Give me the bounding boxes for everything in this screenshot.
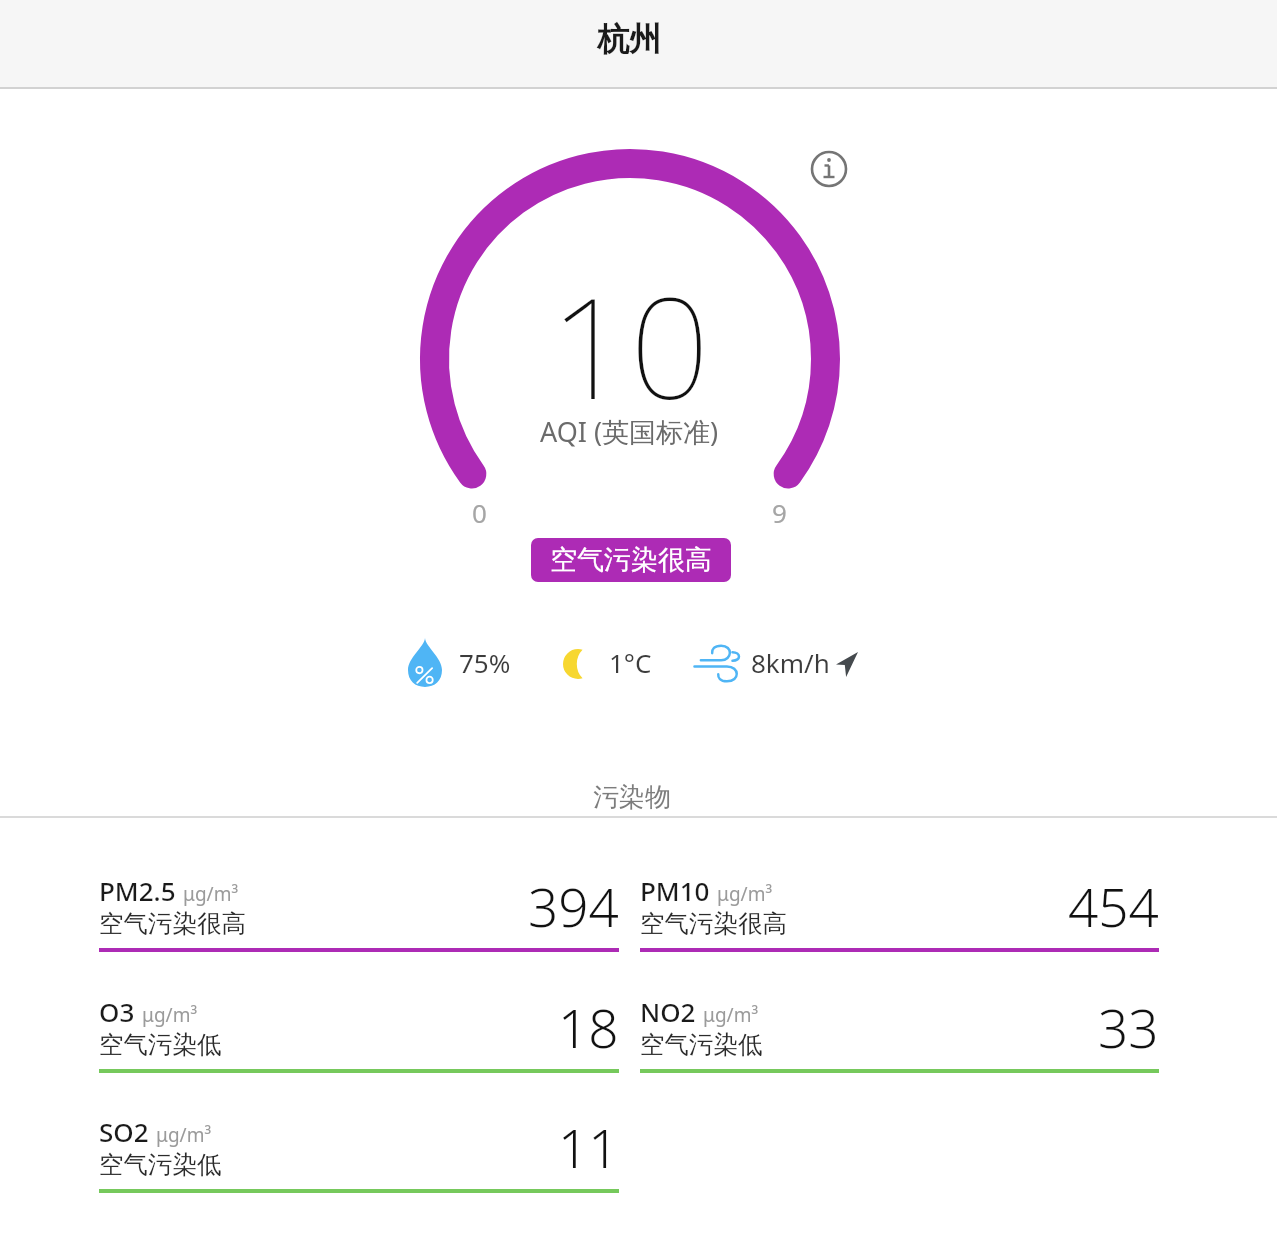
button[interactable]: Wind direction <box>836 652 858 677</box>
staticText: 空气污染很高 <box>550 543 712 577</box>
staticText: 75% <box>459 645 511 680</box>
staticText: 9 <box>772 495 787 530</box>
staticText: 11 <box>558 1111 619 1183</box>
staticText: 18 <box>558 991 619 1063</box>
staticText: O3 <box>99 994 135 1029</box>
staticText: μg/m³ <box>156 1122 212 1148</box>
button[interactable]: PM2.5 <box>99 867 619 952</box>
button[interactable]: Night <box>563 649 593 679</box>
button[interactable]: Wind <box>691 640 749 684</box>
staticText: μg/m³ <box>183 881 239 907</box>
button[interactable]: 空气污染很高 <box>531 538 731 582</box>
button[interactable]: Info <box>805 145 853 193</box>
staticText: 空气污染低 <box>99 1149 222 1180</box>
staticText: AQI (英国标准) <box>540 413 719 450</box>
staticText: SO2 <box>99 1114 149 1149</box>
button[interactable]: O3 <box>99 988 619 1073</box>
staticText: 空气污染低 <box>640 1029 763 1060</box>
staticText: μg/m³ <box>142 1002 198 1028</box>
button[interactable]: PM10 <box>640 867 1159 952</box>
button[interactable]: SO2 <box>99 1108 619 1193</box>
staticText: 空气污染低 <box>99 1029 222 1060</box>
staticText: 0 <box>472 495 487 530</box>
staticText: μg/m³ <box>717 881 773 907</box>
button[interactable]: Humidity <box>408 638 442 687</box>
staticText: 空气污染很高 <box>640 908 787 939</box>
staticText: 8km/h <box>751 645 830 680</box>
button[interactable]: NO2 <box>640 988 1159 1073</box>
staticText: 394 <box>528 870 619 942</box>
staticText: 空气污染很高 <box>99 908 246 939</box>
staticText: PM10 <box>640 873 710 908</box>
staticText: μg/m³ <box>703 1002 759 1028</box>
button[interactable]: 杭州 <box>0 0 1277 87</box>
staticText: NO2 <box>640 994 696 1029</box>
staticText: 10 <box>550 249 710 440</box>
staticText: 杭州 <box>597 19 661 59</box>
staticText: PM2.5 <box>99 873 176 908</box>
staticText: 454 <box>1068 870 1159 942</box>
staticText: 污染物 <box>593 781 671 814</box>
staticText: 1°C <box>609 645 652 680</box>
staticText: 33 <box>1098 991 1159 1063</box>
